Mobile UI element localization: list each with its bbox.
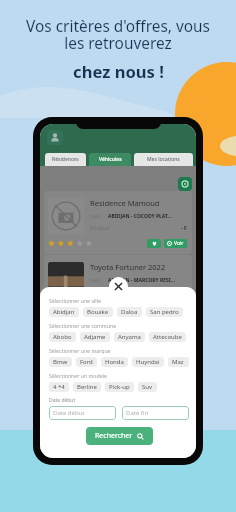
button[interactable]: Attecoube [149,332,186,342]
staticText: chez nous ! [73,60,164,83]
button[interactable]: Anyama [114,332,145,342]
button[interactable]: Honda [101,357,128,367]
button[interactable]: Favorite [147,303,161,312]
button[interactable]: Adjame [80,332,110,342]
staticText: 4 *4 [53,383,65,391]
staticText: Vos critères d'offres, vous les retrouve… [26,16,210,54]
button[interactable]: Filter [178,177,192,191]
staticText: Voir [174,304,184,311]
staticText: Pick-up [109,383,130,391]
staticText: ABIDJAN - MARCORY RESI... [108,277,175,284]
staticText: Adjame [84,333,106,341]
button[interactable]: Date fin [122,406,189,420]
button[interactable]: Abidjan [49,307,79,317]
button[interactable]: Profile [47,130,63,145]
button[interactable]: Véhicules [89,153,131,166]
button[interactable]: Rechercher [86,427,153,445]
staticText: Lieu [90,213,100,220]
staticText: Berline [77,383,97,391]
button[interactable]: Huyndai [132,357,164,367]
staticText: Toyota Fortuner 2022 [90,262,166,272]
staticText: Sélectionner une marque [49,347,111,354]
button[interactable]: Close [109,277,128,296]
button[interactable]: Berline [73,382,101,392]
staticText: Suv [142,383,153,391]
staticText: Anyama [118,333,141,341]
button[interactable]: Date début [49,406,116,420]
button[interactable]: 4 *4 [49,382,69,392]
button[interactable]: Daloa [117,307,142,317]
button[interactable]: Mes locations [134,153,193,166]
button[interactable]: San pedro [146,307,183,317]
button[interactable]: Favorite [147,239,161,248]
staticText: Date fin [126,409,149,417]
button[interactable]: Pick-up [105,382,134,392]
staticText: Abidjan [53,308,75,316]
staticText: Sélectionner un modele [49,372,107,379]
staticText: Huyndai [136,358,160,366]
staticText: Voir [174,240,184,247]
staticText: Residence Mamoud [90,198,160,208]
staticText: Ford [80,358,93,366]
button[interactable]: Bouake [83,307,113,317]
staticText: Bmw [53,358,68,366]
staticText: Prix/jour [90,225,111,232]
staticText: Daloa [121,308,138,316]
staticText: Véhicules [99,156,122,163]
button[interactable]: Toyota Fortuner 2022 [44,255,192,318]
staticText: ABIDJAN - COCODY PLAT... [108,213,172,220]
staticText: Honda [105,358,124,366]
staticText: - F [181,225,187,232]
staticText: Sélectionner une commune [49,322,117,329]
button[interactable]: Bmw [49,357,72,367]
staticText: Sélectionner une ville [49,297,101,304]
staticText: Rechercher [95,431,133,441]
button[interactable]: Ford [76,357,97,367]
button[interactable]: Résidences [45,153,86,166]
staticText: Mazda [172,358,185,366]
staticText: Abobo [53,333,72,341]
staticText: Attecoube [153,333,182,341]
button[interactable]: Suv [138,382,157,392]
staticText: San pedro [150,308,179,316]
button[interactable]: Voir [164,303,187,312]
staticText: Bouake [87,308,109,316]
staticText: Mes locations [147,156,180,163]
staticText: Date début [49,397,76,404]
button[interactable]: Residence Mamoud [44,191,192,254]
staticText: Lieu [90,277,100,284]
staticText: Date début [53,409,85,417]
button[interactable]: Abobo [49,332,76,342]
button[interactable]: Mazda [168,357,189,367]
staticText: Résidences [52,156,79,163]
button[interactable]: Voir [164,239,187,248]
